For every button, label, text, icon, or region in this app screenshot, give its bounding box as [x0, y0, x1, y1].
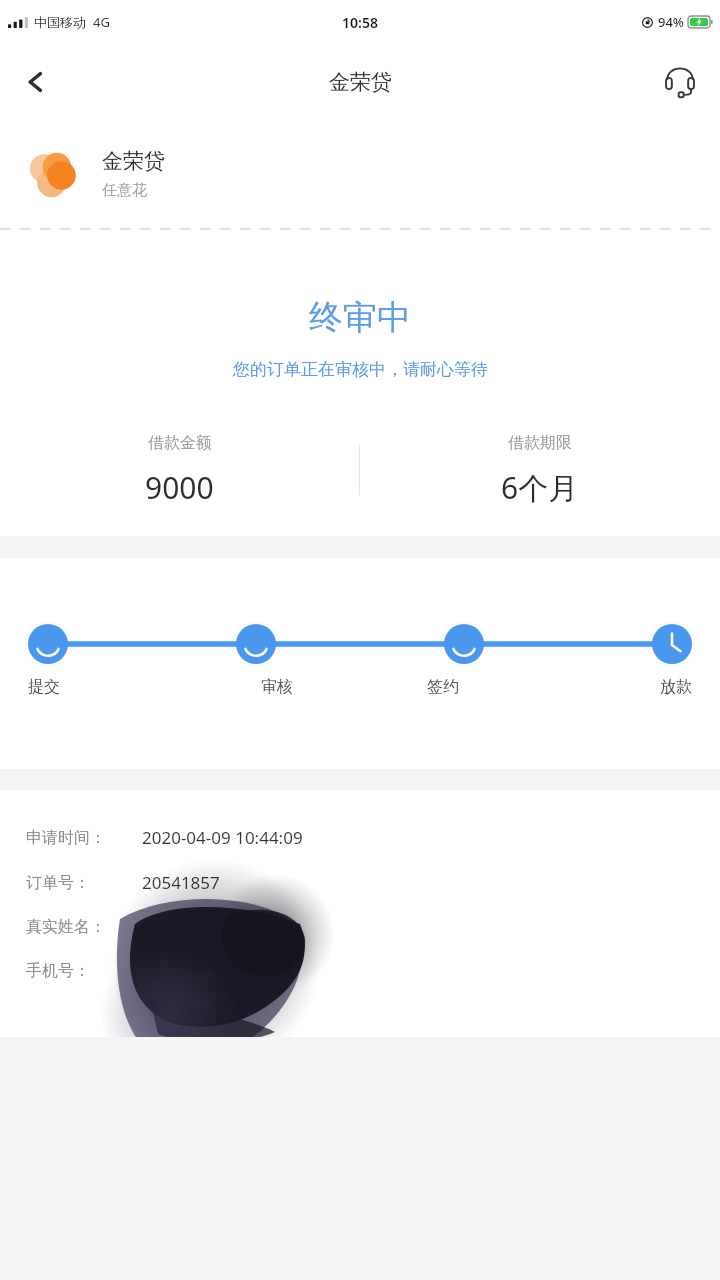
staticText: 张伟涛: [142, 916, 193, 937]
button[interactable]: 客服: [654, 56, 706, 108]
staticText: 中国移动: [34, 14, 86, 30]
staticText: 申请时间：: [26, 828, 106, 848]
staticText: 金荣贷: [329, 69, 392, 95]
staticText: 任意花: [102, 181, 147, 200]
staticText: 金荣贷: [102, 148, 165, 174]
staticText: 2020-04-09 10:44:09: [142, 826, 303, 849]
button[interactable]: 金荣贷: [0, 120, 720, 228]
staticText: 借款期限: [508, 433, 572, 453]
staticText: 20541857: [142, 871, 220, 894]
staticText: 订单号：: [26, 873, 90, 893]
staticText: 审核: [261, 677, 293, 697]
staticText: 真实姓名：: [26, 917, 106, 937]
staticText: 借款金额: [148, 433, 212, 453]
staticText: 94%: [658, 13, 684, 31]
staticText: 6个月: [501, 467, 579, 508]
staticText: 4G: [93, 13, 110, 31]
staticText: 1511****434: [142, 959, 248, 982]
staticText: 终审中: [309, 296, 411, 339]
staticText: 签约: [427, 677, 459, 697]
staticText: 10:58: [342, 13, 378, 32]
staticText: 手机号：: [26, 961, 90, 981]
staticText: 提交: [28, 677, 60, 697]
staticText: 放款: [660, 677, 692, 697]
button[interactable]: 返回: [8, 54, 64, 110]
staticText: 9000: [145, 467, 214, 508]
staticText: 您的订单正在审核中，请耐心等待: [233, 359, 488, 380]
